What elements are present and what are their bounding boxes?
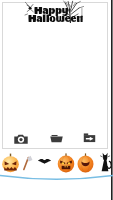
button[interactable]: Axe <box>20 154 36 172</box>
staticText: Happy <box>34 3 69 19</box>
button[interactable]: Save image <box>83 132 96 144</box>
button[interactable]: Take photo <box>14 132 28 145</box>
button[interactable]: Black cat <box>98 152 112 173</box>
button[interactable]: Pumpkin <box>77 153 94 173</box>
button[interactable]: Pumpkin face <box>57 153 75 173</box>
button[interactable]: Bat <box>37 156 52 169</box>
staticText: Halloween <box>28 11 84 27</box>
button[interactable]: Open gallery <box>50 133 63 144</box>
button[interactable]: Jack-o-lantern <box>1 153 20 173</box>
